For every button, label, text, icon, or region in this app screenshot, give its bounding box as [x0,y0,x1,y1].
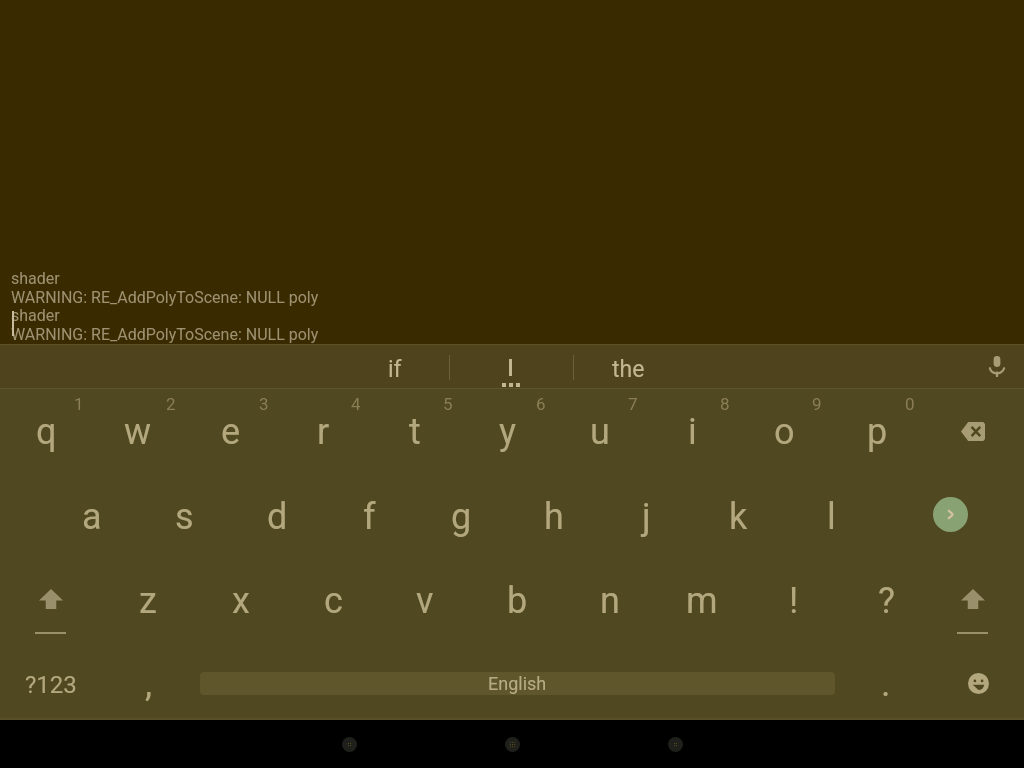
staticText: i [688,411,697,453]
staticText: , [145,663,153,705]
button[interactable]: f [323,482,415,567]
button[interactable]: Emoji keyboard [940,650,1016,720]
staticText: n [600,580,620,622]
staticText: z [139,580,157,622]
button[interactable]: , [102,650,196,720]
staticText: 9 [812,394,822,414]
button[interactable]: Home [490,731,534,757]
staticText: j [642,496,651,538]
staticText: t [409,411,421,453]
button[interactable]: c [287,566,379,651]
button[interactable]: m [656,566,748,651]
button[interactable]: r [277,397,369,482]
staticText: h [544,496,564,538]
staticText: g [451,496,472,538]
button[interactable]: x [195,566,287,651]
staticText: 8 [720,394,730,414]
button[interactable]: e [185,397,277,482]
button[interactable]: g [415,482,507,567]
staticText: r [317,411,330,453]
staticText: w [124,411,152,453]
staticText: k [729,496,748,538]
staticText: y [499,411,517,453]
staticText: ?123 [25,671,77,699]
button[interactable]: h [508,482,600,567]
staticText: if [388,356,402,383]
staticText: f [363,496,376,538]
staticText: d [267,496,288,538]
staticText: o [774,411,795,453]
button[interactable]: n [564,566,656,651]
staticText: p [867,411,888,453]
button[interactable]: Text input area [0,0,1024,344]
button[interactable]: w [92,397,184,482]
button[interactable]: v [379,566,471,651]
staticText: the [612,356,645,383]
button[interactable]: if [337,344,453,389]
staticText: WARNING: RE_AddPolyToScene: NULL poly [11,288,319,307]
button[interactable]: y [462,397,554,482]
button[interactable]: b [471,566,563,651]
staticText: 0 [905,394,915,414]
button[interactable]: p [831,397,923,482]
staticText: c [324,580,343,622]
staticText: ! [789,580,799,622]
staticText: 6 [536,394,546,414]
staticText: 1 [74,394,84,414]
button[interactable]: Shift [0,566,102,651]
button[interactable]: j [600,482,692,567]
button[interactable]: t [369,397,461,482]
button[interactable]: Shift [922,566,1024,651]
button[interactable]: ! [748,566,840,651]
button[interactable]: English [200,672,835,695]
button[interactable]: Back [327,731,371,757]
button[interactable]: d [231,482,323,567]
button[interactable]: ? [841,566,933,651]
button[interactable]: a [46,482,138,567]
staticText: u [590,411,610,453]
button[interactable]: ?123 [0,650,102,720]
staticText: . [881,663,891,705]
button[interactable]: q [0,397,92,482]
button[interactable]: i [646,397,738,482]
button[interactable]: Enter [922,482,1024,567]
staticText: shader [11,306,60,325]
staticText: m [686,580,718,622]
staticText: 5 [443,394,453,414]
button[interactable]: Voice input [979,351,1015,381]
staticText: b [507,580,528,622]
staticText: shader [11,269,60,288]
button[interactable]: the [570,344,686,389]
button[interactable]: o [738,397,830,482]
staticText: v [416,580,434,622]
staticText: 4 [351,394,361,414]
staticText: q [36,411,57,453]
staticText: ? [878,580,896,622]
staticText: s [175,496,194,538]
staticText: 3 [259,394,269,414]
staticText: 7 [628,394,638,414]
button[interactable]: I, more suggestions [453,344,569,389]
button[interactable]: . [840,650,932,720]
staticText: WARNING: RE_AddPolyToScene: NULL poly [11,325,319,344]
staticText: x [232,580,250,622]
staticText: 2 [166,394,176,414]
staticText: a [82,496,102,538]
staticText: e [221,411,241,453]
button[interactable]: k [692,482,784,567]
staticText: English [488,673,547,694]
button[interactable]: z [102,566,194,651]
button[interactable]: Recent apps [653,731,697,757]
button[interactable]: l [785,482,877,567]
button[interactable]: u [554,397,646,482]
staticText: l [827,496,836,538]
button[interactable]: s [138,482,230,567]
button[interactable]: Backspace [922,397,1024,482]
